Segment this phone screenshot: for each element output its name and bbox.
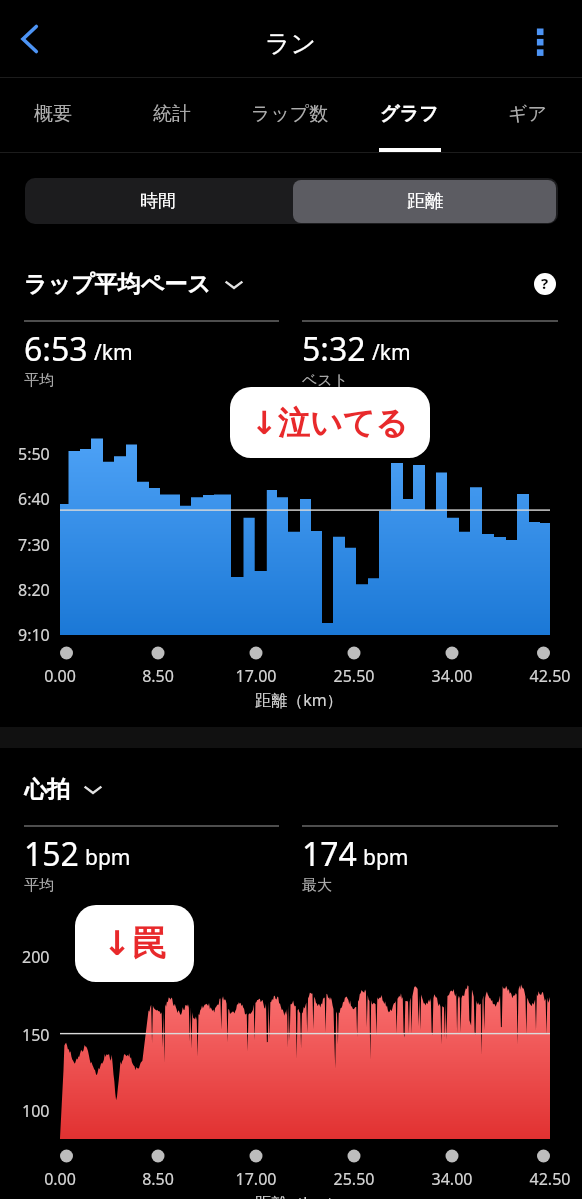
staticText: ラン [265,28,317,59]
button[interactable]: ギア [469,78,582,152]
staticText: 174 [302,832,357,876]
staticText: 34.00 [412,1168,492,1190]
staticText: 最大 [302,876,332,895]
staticText: 5:32 [302,327,366,371]
staticText: 6:40 [18,488,50,510]
staticText: 200 [22,946,50,968]
staticText: ? [541,273,549,293]
staticText: 平均 [24,876,54,895]
staticText: bpm [85,843,131,872]
staticText: /km [94,338,133,367]
staticText: ギア [508,102,547,126]
staticText: ↓罠 [103,922,166,965]
staticText: 6:53 [24,327,88,371]
staticText: 42.50 [510,665,582,687]
staticText: 心拍 [24,775,70,804]
staticText: 152 [24,832,79,876]
staticText: ラップ平均ペース [24,270,211,299]
staticText: 距離（km） [249,689,349,711]
staticText: ベスト [302,371,349,390]
staticText: 0.00 [20,665,100,687]
staticText: 平均 [24,371,54,390]
button[interactable]: More options [514,14,570,70]
staticText: 34.00 [412,665,492,687]
staticText: 距離（km） [249,1192,349,1199]
staticText: 8:20 [18,579,50,601]
staticText: ラップ数 [251,102,329,126]
button[interactable]: ラップ数 [232,78,348,152]
button[interactable]: 統計 [114,78,230,152]
staticText: ↓泣いてる [251,403,409,443]
staticText: 42.50 [510,1168,582,1190]
staticText: /km [372,338,411,367]
staticText: 統計 [153,102,191,126]
staticText: 9:10 [18,624,50,646]
button[interactable]: 心拍 [24,771,103,807]
button[interactable]: ↓泣いてる [230,387,430,458]
staticText: 25.50 [314,1168,394,1190]
staticText: 0.00 [20,1168,100,1190]
staticText: 8.50 [118,1168,198,1190]
staticText: 150 [22,1024,50,1046]
staticText: 25.50 [314,665,394,687]
button[interactable]: 概要 [0,78,111,152]
staticText: 17.00 [216,665,296,687]
staticText: 7:30 [18,534,50,556]
staticText: bpm [363,843,409,872]
staticText: 概要 [34,102,72,126]
button[interactable]: 距離 [291,178,558,224]
button[interactable]: Help [531,270,559,298]
button[interactable]: 時間 [25,178,291,224]
staticText: 5:50 [18,443,50,465]
staticText: 100 [22,1100,50,1122]
staticText: グラフ [380,102,439,126]
button[interactable]: ↓罠 [75,905,194,982]
button[interactable]: Back [1,11,57,67]
staticText: 17.00 [216,1168,296,1190]
button[interactable]: ラップ平均ペース [24,266,244,302]
staticText: 時間 [140,190,176,213]
staticText: 8.50 [118,665,198,687]
staticText: 距離 [407,190,443,213]
button[interactable]: グラフ [351,78,467,152]
